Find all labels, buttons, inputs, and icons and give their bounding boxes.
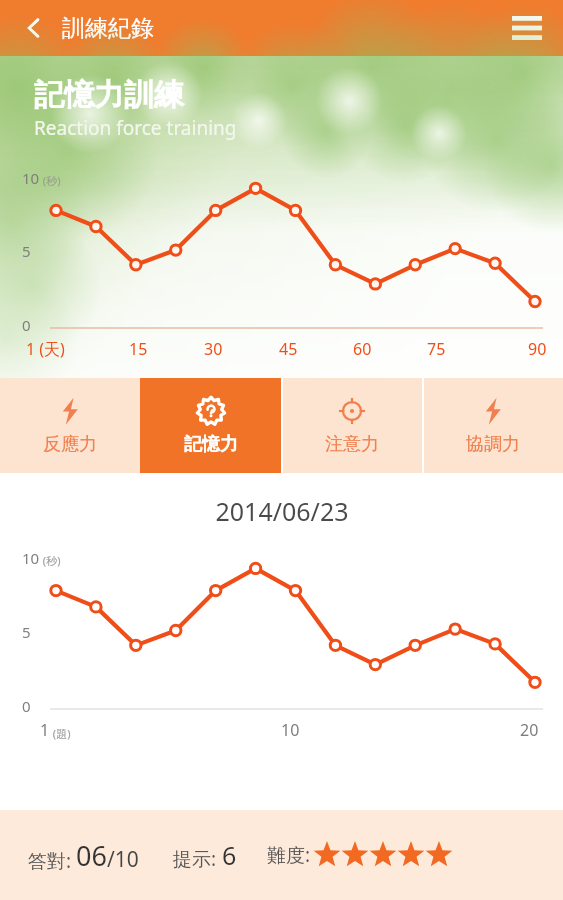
staticText: 60 — [353, 338, 372, 360]
staticText: 20 — [520, 719, 539, 741]
staticText: (秒) — [40, 173, 61, 188]
staticText: (題) — [50, 726, 71, 741]
staticText: 75 — [427, 338, 446, 360]
staticText: 5 — [22, 622, 31, 642]
staticText: 0 — [22, 696, 31, 716]
staticText: /10 — [107, 845, 139, 874]
staticText: 記憶力訓練 — [34, 76, 184, 114]
staticText: 5 — [22, 241, 31, 261]
staticText: 訓練紀錄 — [62, 14, 154, 43]
button[interactable]: 反應力 — [0, 378, 140, 473]
staticText: 10 — [281, 719, 300, 741]
staticText: 提示: — [173, 846, 217, 872]
staticText: 06 — [76, 837, 107, 874]
button[interactable]: Menu — [503, 4, 551, 52]
staticText: 協調力 — [466, 433, 520, 456]
staticText: 注意力 — [325, 433, 379, 456]
staticText: 反應力 — [43, 433, 97, 456]
staticText: (秒) — [40, 553, 61, 568]
staticText: 90 — [528, 338, 547, 360]
staticText: 0 — [22, 315, 31, 335]
staticText: 記憶力 — [184, 433, 238, 456]
button[interactable]: 注意力 — [281, 378, 422, 473]
staticText: 答對: — [28, 848, 72, 874]
staticText: 10 — [22, 168, 40, 188]
button[interactable]: Back — [12, 6, 56, 50]
button[interactable]: 記憶力 — [140, 378, 281, 473]
staticText: 6 — [222, 838, 237, 872]
staticText: 30 — [204, 338, 223, 360]
button[interactable]: 協調力 — [422, 378, 563, 473]
staticText: 10 — [22, 548, 40, 568]
staticText: 難度: — [267, 842, 311, 868]
staticText: 2014/06/23 — [215, 494, 349, 528]
staticText: Reaction force training — [34, 115, 237, 141]
staticText: 45 — [279, 338, 298, 360]
staticText: 1 — [40, 719, 50, 741]
staticText: 1 (天) — [26, 338, 65, 360]
staticText: 15 — [129, 338, 148, 360]
